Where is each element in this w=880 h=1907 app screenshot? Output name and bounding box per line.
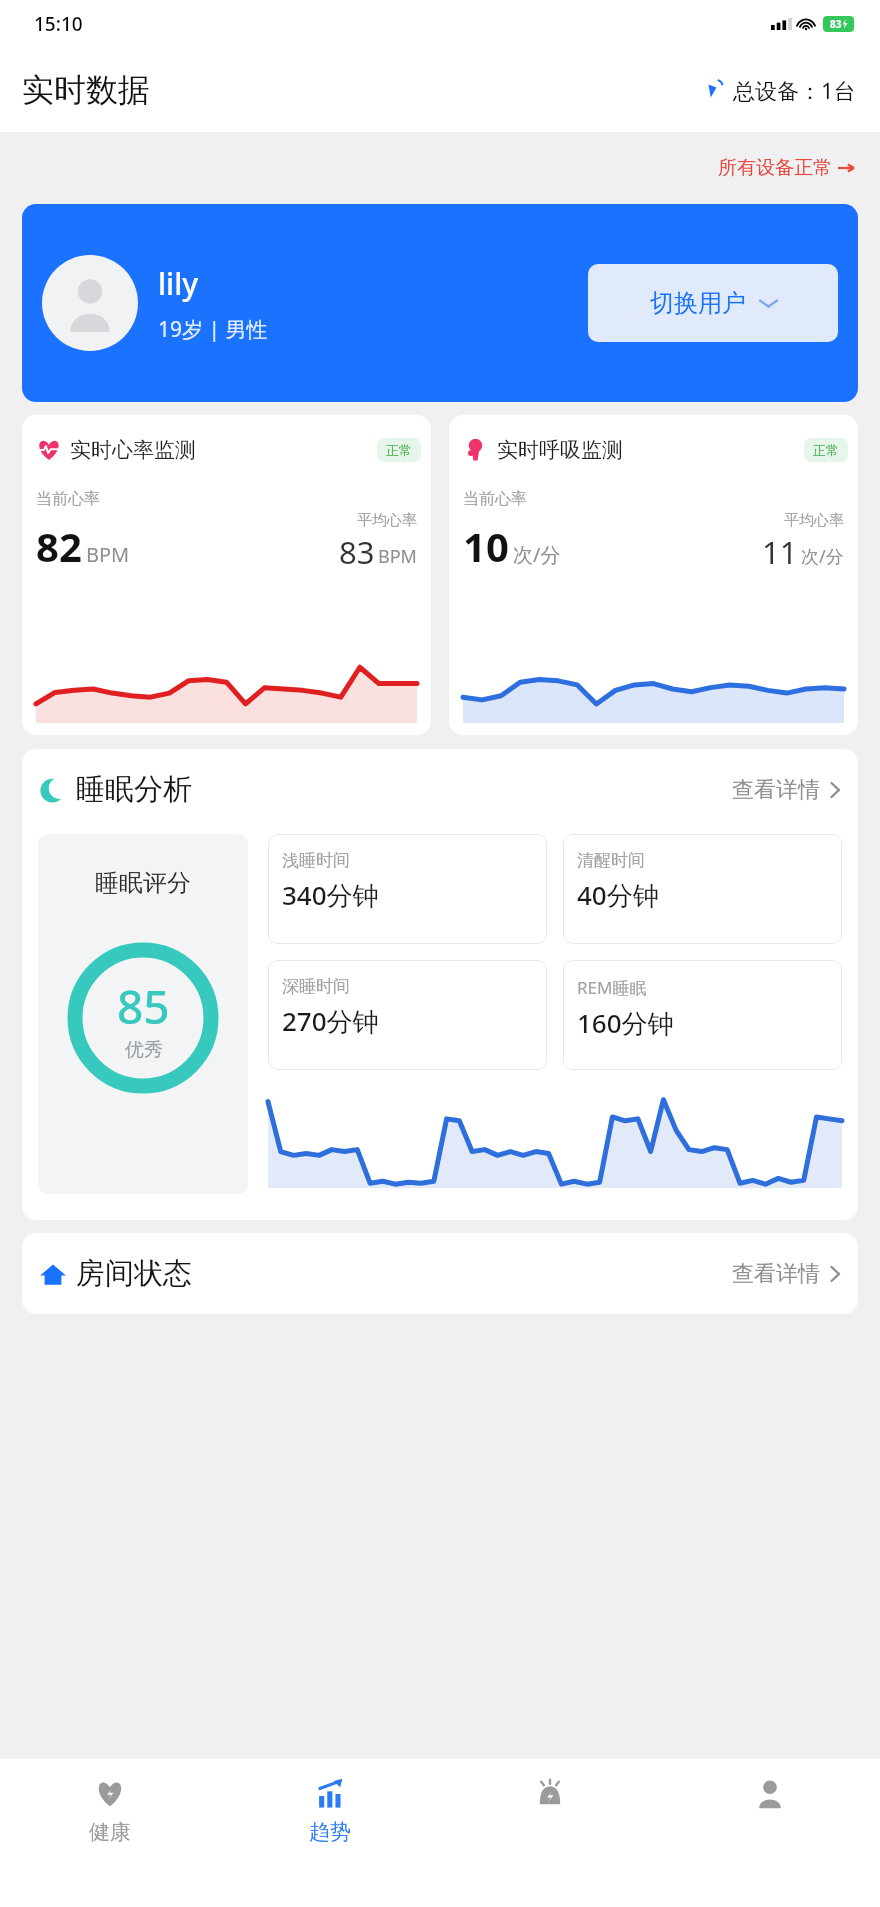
button[interactable]: 总设备：1台 (704, 71, 858, 109)
button[interactable]: 深睡时间 (268, 960, 547, 1070)
staticText: REM睡眠 (577, 976, 647, 999)
button[interactable]: Navigation item (440, 1759, 660, 1907)
staticText: BPM (86, 541, 130, 568)
staticText: 85 (117, 975, 170, 1038)
staticText: 实时呼吸监测 (497, 437, 623, 463)
staticText: 查看详情 (732, 1260, 820, 1288)
button[interactable]: REM睡眠 (563, 960, 842, 1070)
staticText: 340分钟 (282, 877, 379, 913)
button[interactable]: 实时呼吸监测 (449, 415, 858, 735)
staticText: 15:10 (34, 11, 83, 37)
staticText: 优秀 (125, 1038, 163, 1062)
button[interactable]: 浅睡时间 (268, 834, 547, 944)
button[interactable]: 切换用户 (588, 264, 838, 342)
staticText: 查看详情 (732, 776, 820, 804)
staticText: 所有设备正常 (718, 156, 832, 180)
staticText: 40分钟 (577, 877, 659, 913)
staticText: 160分钟 (577, 1005, 674, 1041)
button[interactable]: 健康 (0, 1759, 220, 1907)
button[interactable]: lily (22, 204, 858, 402)
staticText: lily (158, 263, 199, 304)
staticText: 总设备：1台 (733, 75, 856, 105)
staticText: 19岁 | 男性 (158, 315, 268, 344)
staticText: 清醒时间 (577, 850, 645, 871)
staticText: 睡眠评分 (95, 868, 191, 898)
staticText: 切换用户 (650, 288, 746, 318)
staticText: 健康 (89, 1819, 131, 1845)
staticText: 11 (762, 531, 798, 573)
button[interactable]: 实时心率监测 (22, 415, 431, 735)
button[interactable]: 睡眠分析 (38, 771, 842, 808)
staticText: 270分钟 (282, 1003, 379, 1039)
button[interactable]: 趋势 (220, 1759, 440, 1907)
staticText: 83 (830, 17, 842, 31)
staticText: 10 (463, 519, 509, 573)
staticText: 实时数据 (22, 70, 150, 110)
staticText: 浅睡时间 (282, 850, 350, 871)
staticText: BPM (378, 544, 417, 569)
staticText: 深睡时间 (282, 976, 350, 997)
staticText: 83 (339, 531, 375, 573)
staticText: 当前心率 (463, 489, 527, 509)
staticText: 当前心率 (36, 489, 100, 509)
staticText: 正常 (813, 442, 839, 458)
staticText: 平均心率 (357, 511, 417, 530)
staticText: 平均心率 (784, 511, 844, 530)
button[interactable]: 所有设备正常 (714, 152, 858, 184)
button[interactable]: 房间状态 (38, 1255, 842, 1292)
staticText: 实时心率监测 (70, 437, 196, 463)
staticText: 82 (36, 519, 82, 573)
button[interactable]: Navigation item (660, 1759, 880, 1907)
button[interactable]: 清醒时间 (563, 834, 842, 944)
staticText: 趋势 (309, 1819, 351, 1845)
staticText: 睡眠分析 (76, 771, 192, 808)
staticText: 次/分 (801, 544, 844, 569)
staticText: 次/分 (513, 541, 561, 568)
staticText: 房间状态 (76, 1255, 192, 1292)
staticText: 正常 (386, 442, 412, 458)
